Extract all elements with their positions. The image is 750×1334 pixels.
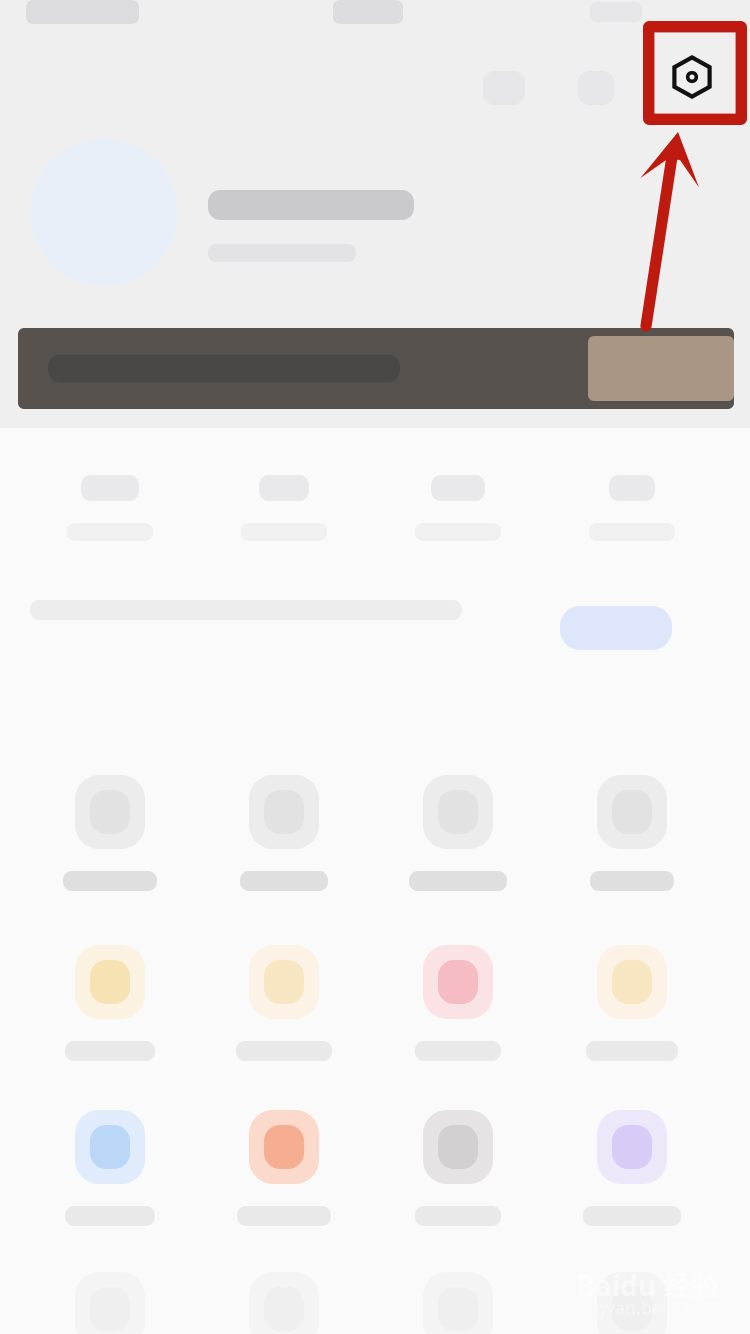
button[interactable]: Stat bbox=[197, 438, 371, 578]
button[interactable]: Stat bbox=[23, 438, 197, 578]
staticText: Baidu 经验 bbox=[576, 1266, 719, 1304]
button[interactable]: Stat bbox=[371, 438, 545, 578]
button[interactable]: Shortcut bbox=[371, 1086, 545, 1250]
button[interactable]: Stat bbox=[545, 438, 719, 578]
button[interactable]: Shortcut bbox=[23, 1248, 197, 1334]
button[interactable]: Shortcut bbox=[23, 921, 197, 1085]
button[interactable]: Settings bbox=[648, 33, 736, 121]
button[interactable]: Shortcut bbox=[545, 1086, 719, 1250]
button[interactable]: See more bbox=[560, 606, 672, 650]
button[interactable]: Shortcut bbox=[545, 751, 719, 915]
button[interactable]: Messages bbox=[560, 52, 632, 124]
button[interactable]: Shortcut bbox=[23, 751, 197, 915]
button[interactable]: Shortcut bbox=[197, 751, 371, 915]
button[interactable]: Shortcut bbox=[371, 751, 545, 915]
button[interactable]: Shortcut bbox=[197, 921, 371, 1085]
staticText: jingyan.baidu.com bbox=[576, 1296, 727, 1320]
button[interactable]: Shortcut bbox=[371, 921, 545, 1085]
button[interactable]: Shortcut bbox=[371, 1248, 545, 1334]
button[interactable]: Scan bbox=[468, 52, 540, 124]
button[interactable]: Shortcut bbox=[545, 921, 719, 1085]
button[interactable] bbox=[30, 138, 590, 294]
button[interactable]: Shortcut bbox=[197, 1086, 371, 1250]
button[interactable]: Shortcut bbox=[545, 1248, 719, 1334]
button[interactable]: Shortcut bbox=[197, 1248, 371, 1334]
button[interactable]: Shortcut bbox=[23, 1086, 197, 1250]
button[interactable]: Promotion bbox=[18, 328, 734, 409]
